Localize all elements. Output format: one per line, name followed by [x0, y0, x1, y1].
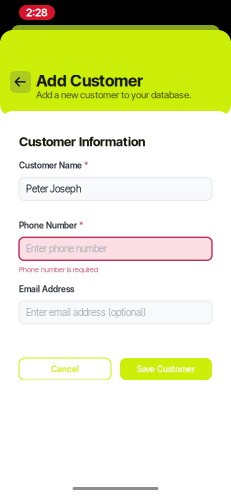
staticText: *: [84, 160, 88, 170]
staticText: Add Customer: [36, 71, 143, 90]
staticText: Cancel: [51, 364, 79, 374]
staticText: Email Address: [19, 284, 74, 294]
staticText: Customer Information: [19, 134, 145, 149]
staticText: Phone number is required: [19, 265, 98, 274]
staticText: 2:28: [26, 6, 48, 19]
staticText: Phone Number: [19, 220, 77, 230]
staticText: Enter email address (optional): [26, 307, 146, 318]
button[interactable]: Save Customer: [120, 358, 212, 380]
staticText: Peter Joseph: [26, 183, 81, 195]
button[interactable]: Back: [10, 71, 31, 93]
staticText: Add a new customer to your database.: [36, 89, 191, 101]
button[interactable]: Cancel: [19, 358, 111, 380]
staticText: Save Customer: [137, 364, 195, 374]
staticText: Customer Name: [19, 160, 82, 170]
staticText: Enter phone number: [26, 243, 107, 255]
staticText: *: [79, 220, 83, 230]
